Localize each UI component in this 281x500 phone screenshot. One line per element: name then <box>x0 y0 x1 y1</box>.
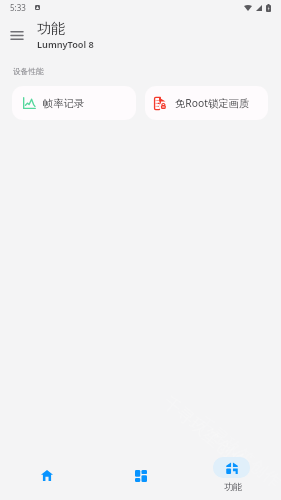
button[interactable]: 免Root锁定画质 <box>145 86 268 120</box>
staticText: 5:33 <box>10 2 26 13</box>
staticText: 帧率记录 <box>43 97 85 110</box>
staticText: 免Root锁定画质 <box>175 96 250 110</box>
button[interactable]: Menu <box>0 19 34 53</box>
staticText: LumnyTool 8 <box>37 38 94 51</box>
staticText: 千寻玖笙创作 <box>159 392 251 472</box>
button[interactable]: 功能 <box>184 457 278 492</box>
staticText: 千寻玖笙创作 <box>193 412 281 492</box>
button[interactable]: Home <box>0 465 93 486</box>
button[interactable]: Tools <box>93 465 187 486</box>
staticText: 功能 <box>37 20 65 38</box>
staticText: 设备性能 <box>13 67 44 77</box>
staticText: 功能 <box>224 481 242 492</box>
button[interactable]: 帧率记录 <box>12 86 136 120</box>
